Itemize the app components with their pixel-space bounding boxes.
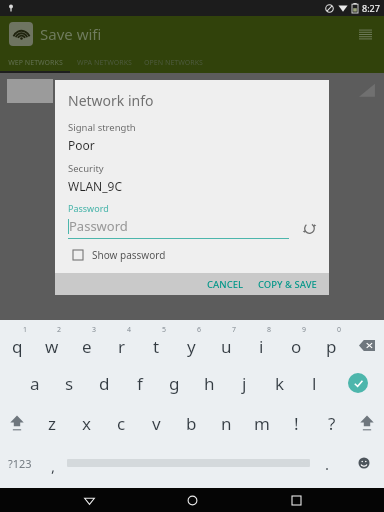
staticText: w	[45, 335, 59, 358]
staticText: f	[137, 372, 143, 395]
button[interactable]: !	[279, 403, 314, 443]
button[interactable]: x	[69, 403, 104, 443]
staticText: c	[117, 412, 126, 435]
staticText: Show password	[92, 248, 166, 262]
button[interactable]: 1	[0, 323, 34, 363]
staticText: v	[152, 412, 161, 435]
button[interactable]: s	[52, 363, 87, 403]
staticText: 1	[23, 325, 28, 335]
button[interactable]: Shift	[349, 403, 384, 443]
staticText: Security	[68, 162, 104, 175]
button[interactable]: m	[244, 403, 279, 443]
button[interactable]: Back	[74, 488, 104, 512]
staticText: Password	[68, 202, 109, 214]
button[interactable]: h	[192, 363, 227, 403]
staticText: CANCEL	[207, 278, 244, 291]
staticText: 0	[337, 325, 342, 335]
staticText: ?	[328, 412, 336, 435]
button[interactable]: k	[262, 363, 297, 403]
button[interactable]: Backspace	[349, 323, 384, 363]
button[interactable]: Menu	[354, 23, 376, 45]
staticText: q	[12, 335, 23, 358]
staticText: 6	[197, 325, 202, 335]
button[interactable]: Enter	[332, 363, 384, 403]
button[interactable]: l	[297, 363, 332, 403]
staticText: t	[153, 335, 160, 358]
staticText: 3	[92, 325, 97, 335]
button[interactable]: Recents	[281, 488, 311, 512]
staticText: 2	[57, 325, 62, 335]
staticText: 5	[162, 325, 167, 335]
button[interactable]: 4	[104, 323, 139, 363]
button[interactable]: f	[122, 363, 157, 403]
button[interactable]: a	[17, 363, 52, 403]
staticText: o	[291, 335, 302, 358]
button[interactable]: g	[157, 363, 192, 403]
button[interactable]: 0	[314, 323, 349, 363]
button[interactable]: COPY & SAVE	[258, 278, 317, 291]
button[interactable]: WEP NETWORKS	[0, 52, 70, 73]
button[interactable]: c	[104, 403, 139, 443]
staticText: p	[326, 335, 337, 358]
staticText: 4	[127, 325, 132, 335]
staticText: Signal strength	[68, 121, 136, 134]
button[interactable]: 2	[34, 323, 69, 363]
staticText: d	[99, 372, 110, 395]
staticText: ?123	[8, 456, 32, 471]
button[interactable]: 9	[279, 323, 314, 363]
button[interactable]: Generate password	[299, 218, 319, 238]
staticText: i	[259, 335, 264, 358]
button[interactable]: ,	[40, 443, 66, 483]
staticText: !	[294, 412, 299, 435]
button[interactable]: ?	[314, 403, 349, 443]
staticText: .	[325, 454, 330, 474]
staticText: u	[221, 335, 232, 358]
staticText: r	[118, 335, 126, 358]
button[interactable]: 5	[139, 323, 174, 363]
staticText: Network info	[68, 91, 154, 110]
button[interactable]: j	[227, 363, 262, 403]
staticText: COPY & SAVE	[258, 278, 317, 291]
button[interactable]: 8	[244, 323, 279, 363]
button[interactable]: ?123	[0, 443, 40, 483]
button[interactable]: Shift	[0, 403, 34, 443]
staticText: 8	[267, 325, 272, 335]
button[interactable]: OPEN NETWORKS	[138, 52, 208, 73]
staticText: h	[204, 372, 215, 395]
staticText: y	[187, 335, 196, 358]
staticText: l	[312, 372, 317, 395]
staticText: OPEN NETWORKS	[144, 58, 203, 68]
button[interactable]: Home	[177, 488, 207, 512]
staticText: g	[169, 372, 180, 395]
button[interactable]: n	[209, 403, 244, 443]
button[interactable]: 3	[69, 323, 104, 363]
button[interactable]: Show password	[73, 248, 166, 262]
staticText: z	[48, 412, 56, 435]
button[interactable]: .	[311, 443, 344, 483]
button[interactable]: 6	[174, 323, 209, 363]
staticText: Password	[69, 217, 128, 235]
staticText: ,	[51, 456, 56, 476]
staticText: n	[221, 412, 232, 435]
button[interactable]: Space	[66, 443, 311, 483]
button[interactable]: d	[87, 363, 122, 403]
staticText: Save wifi	[40, 24, 102, 44]
button[interactable]: CANCEL	[207, 278, 244, 291]
staticText: Poor	[68, 137, 95, 153]
staticText: a	[30, 372, 40, 395]
button[interactable]: 7	[209, 323, 244, 363]
button[interactable]: v	[139, 403, 174, 443]
staticText: WLAN_9C	[68, 178, 123, 194]
button[interactable]: Emoji	[344, 443, 384, 483]
staticText: WPA NETWORKS	[77, 58, 132, 68]
button[interactable]: b	[174, 403, 209, 443]
staticText: m	[254, 412, 270, 435]
staticText: 8:27	[362, 2, 380, 14]
staticText: e	[82, 335, 92, 358]
staticText: WEP NETWORKS	[8, 58, 63, 68]
button[interactable]: Password	[68, 217, 289, 239]
staticText: s	[65, 372, 74, 395]
button[interactable]: z	[34, 403, 69, 443]
button[interactable]: WPA NETWORKS	[70, 52, 138, 73]
staticText: b	[186, 412, 197, 435]
